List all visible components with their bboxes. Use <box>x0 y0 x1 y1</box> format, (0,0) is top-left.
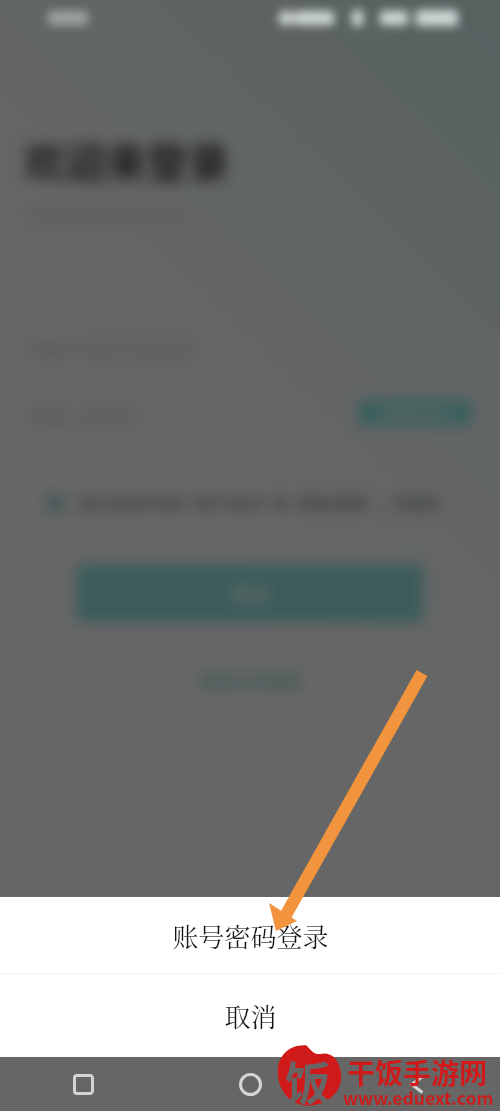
staticText: 饭 <box>285 1047 331 1109</box>
staticText: 欢迎来登录 <box>24 130 229 189</box>
button[interactable]: 取消 <box>0 974 500 1057</box>
button[interactable]: Recent apps <box>60 1061 106 1107</box>
button[interactable]: Home <box>227 1061 273 1107</box>
staticText: 干饭手游网 <box>347 1052 488 1093</box>
staticText: 登录 <box>230 579 270 608</box>
button[interactable]: 账号密码登录 <box>0 897 500 973</box>
staticText: 取消 <box>224 997 277 1034</box>
staticText: www.eduext.com <box>343 1085 494 1110</box>
staticText: 我已阅读并同意《用户协议》和《隐私政策》，并授权 <box>78 492 439 514</box>
staticText: 账号密码登录 <box>172 917 329 954</box>
button[interactable]: Back <box>394 1061 440 1107</box>
staticText: 其他方式登录 <box>199 668 301 693</box>
